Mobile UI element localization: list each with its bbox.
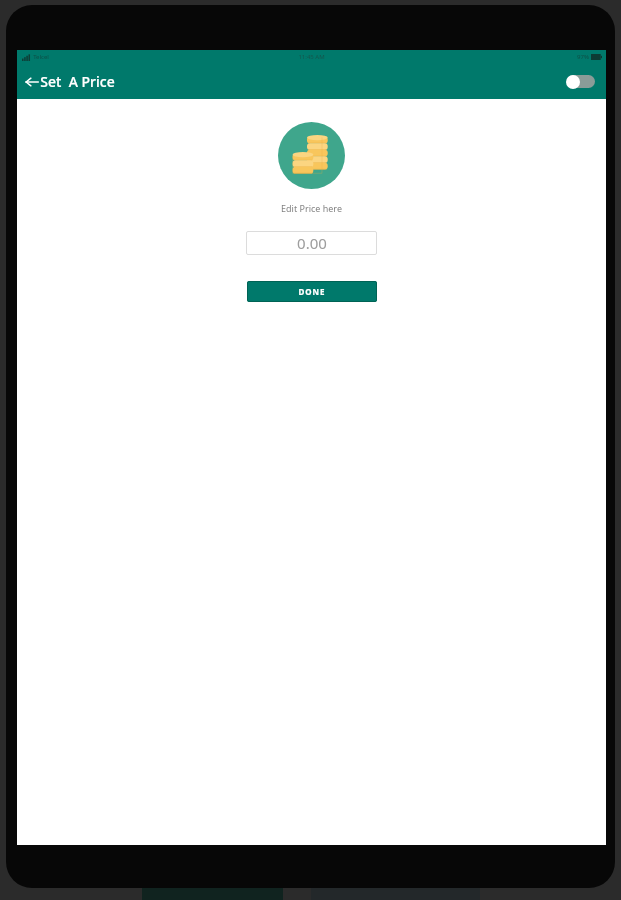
button[interactable]: DONE xyxy=(247,281,377,302)
staticText: Edit Price here xyxy=(281,202,342,214)
button[interactable]: Toggle xyxy=(564,72,598,92)
button[interactable]: Set A Price xyxy=(17,68,123,95)
staticText: 11:45 AM xyxy=(298,53,325,61)
staticText: 0.00 xyxy=(297,233,327,253)
button[interactable]: 0.00 xyxy=(246,231,377,255)
staticText: 97% xyxy=(577,53,589,61)
staticText: DONE xyxy=(298,286,326,297)
button[interactable]: Price icon xyxy=(278,122,345,189)
staticText: Set A Price xyxy=(40,72,115,91)
staticText: Telcel xyxy=(33,53,49,61)
